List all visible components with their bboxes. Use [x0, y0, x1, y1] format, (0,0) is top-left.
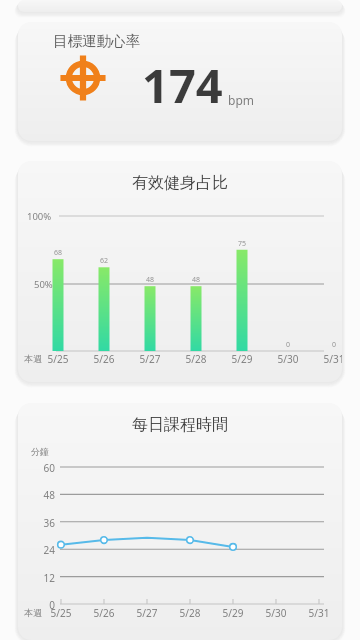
staticText: 5/27 — [135, 352, 165, 366]
staticText: 0 — [278, 340, 298, 350]
staticText: 5/25 — [43, 352, 73, 366]
staticText: 174 — [142, 53, 223, 117]
staticText: 5/31 — [304, 606, 334, 620]
staticText: 5/30 — [261, 606, 291, 620]
staticText: 100% — [27, 210, 52, 223]
staticText: 50% — [34, 278, 53, 291]
staticText: 75 — [232, 239, 252, 249]
staticText: 每日課程時間 — [18, 415, 342, 435]
staticText: 5/28 — [175, 606, 205, 620]
staticText: 48 — [140, 275, 160, 285]
staticText: 48 — [186, 275, 206, 285]
button[interactable]: 目標運動心率 — [18, 22, 342, 141]
staticText: 目標運動心率 — [53, 32, 140, 50]
other: Target heart rate — [58, 54, 108, 102]
staticText: 分鐘 — [31, 446, 49, 457]
staticText: 5/30 — [273, 352, 303, 366]
staticText: 有效健身占比 — [18, 173, 342, 193]
staticText: 5/25 — [46, 606, 76, 620]
staticText: 5/31 — [319, 352, 342, 366]
staticText: 5/29 — [218, 606, 248, 620]
staticText: 36 — [31, 516, 55, 530]
staticText: 60 — [31, 461, 55, 475]
staticText: 5/29 — [227, 352, 257, 366]
staticText: bpm — [228, 92, 254, 108]
staticText: 本週 — [24, 353, 42, 364]
staticText: 0 — [31, 598, 55, 612]
staticText: 24 — [31, 543, 55, 557]
staticText: 12 — [31, 571, 55, 585]
staticText: 5/26 — [89, 606, 119, 620]
staticText: 5/28 — [181, 352, 211, 366]
staticText: 62 — [94, 256, 114, 266]
staticText: 5/26 — [89, 352, 119, 366]
staticText: 5/27 — [132, 606, 162, 620]
button[interactable]: 每日課程時間 — [18, 403, 342, 640]
staticText: 本週 — [24, 607, 42, 618]
staticText: 0 — [324, 340, 342, 350]
staticText: 68 — [48, 248, 68, 258]
button[interactable]: 有效健身占比 — [18, 161, 342, 382]
staticText: 48 — [31, 488, 55, 502]
